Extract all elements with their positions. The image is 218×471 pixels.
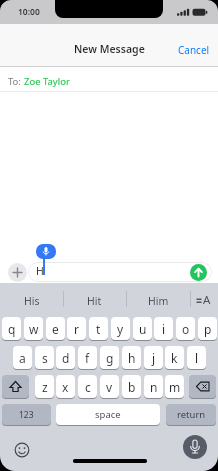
button[interactable] xyxy=(8,263,27,282)
button[interactable]: f xyxy=(78,346,97,369)
button[interactable]: o xyxy=(176,317,195,340)
staticText: z xyxy=(42,379,48,395)
button[interactable] xyxy=(189,375,216,398)
staticText: Cancel xyxy=(178,43,210,57)
button[interactable]: c xyxy=(78,375,97,398)
button[interactable]: l xyxy=(187,346,206,369)
button[interactable]: y xyxy=(111,317,130,340)
staticText: New Message xyxy=(74,42,145,56)
staticText: Hit xyxy=(87,294,102,308)
button[interactable] xyxy=(190,264,207,281)
button[interactable]: s xyxy=(35,346,54,369)
button[interactable]: e xyxy=(46,317,65,340)
staticText: g xyxy=(106,350,114,366)
button[interactable]: a xyxy=(13,346,32,369)
button[interactable]: His xyxy=(0,285,63,317)
button[interactable]: w xyxy=(24,317,43,340)
staticText: d xyxy=(62,350,70,366)
button[interactable]: g xyxy=(100,346,119,369)
staticText: h xyxy=(128,350,136,366)
button[interactable]: space xyxy=(56,404,160,425)
staticText: c xyxy=(85,379,91,395)
button[interactable]: i xyxy=(154,317,173,340)
staticText: return xyxy=(177,408,206,421)
button[interactable]: Hit xyxy=(63,285,126,317)
staticText: w xyxy=(29,321,39,337)
button[interactable]: return xyxy=(166,404,216,425)
button[interactable]: h xyxy=(122,346,141,369)
button[interactable]: v xyxy=(100,375,119,398)
staticText: space xyxy=(95,408,121,421)
button[interactable] xyxy=(13,441,31,459)
button[interactable]: 123 xyxy=(2,404,51,425)
staticText: m xyxy=(169,379,181,395)
button[interactable]: d xyxy=(56,346,75,369)
button[interactable]: b xyxy=(122,375,141,398)
staticText: f xyxy=(85,350,90,366)
button[interactable]: r xyxy=(67,317,86,340)
staticText: 10:00 xyxy=(18,6,40,18)
staticText: j xyxy=(152,350,156,366)
staticText: b xyxy=(128,379,136,395)
staticText: q xyxy=(8,321,16,337)
button[interactable]: q xyxy=(2,317,21,340)
button[interactable] xyxy=(183,435,207,459)
staticText: 123 xyxy=(19,409,34,421)
staticText: e xyxy=(52,321,59,337)
staticText: p xyxy=(204,321,212,337)
staticText: o xyxy=(182,321,190,337)
staticText: r xyxy=(74,321,79,337)
staticText: u xyxy=(139,321,147,337)
staticText: x xyxy=(62,379,69,395)
staticText: Zoe Taylor xyxy=(24,75,70,88)
button[interactable]: Him xyxy=(126,285,190,317)
button[interactable]: p xyxy=(198,317,217,340)
staticText: H xyxy=(36,264,44,278)
button[interactable]: z xyxy=(35,375,54,398)
button[interactable] xyxy=(36,244,56,259)
button[interactable] xyxy=(0,67,218,91)
staticText: A xyxy=(203,292,211,308)
staticText: i xyxy=(162,321,166,337)
button[interactable]: u xyxy=(133,317,152,340)
button[interactable]: n xyxy=(144,375,163,398)
button[interactable]: m xyxy=(165,375,184,398)
staticText: s xyxy=(42,350,48,366)
button[interactable]: k xyxy=(165,346,184,369)
staticText: n xyxy=(150,379,158,395)
staticText: Him xyxy=(148,294,169,308)
staticText: t xyxy=(96,321,101,337)
staticText: To: xyxy=(8,75,21,88)
button[interactable]: t xyxy=(89,317,108,340)
staticText: a xyxy=(19,350,26,366)
staticText: v xyxy=(106,379,113,395)
staticText: His xyxy=(24,294,40,308)
button[interactable]: Cancel xyxy=(174,40,214,60)
button[interactable] xyxy=(2,375,29,398)
staticText: l xyxy=(195,350,199,366)
button[interactable]: x xyxy=(56,375,75,398)
staticText: k xyxy=(171,350,178,366)
staticText: y xyxy=(117,321,124,337)
button[interactable]: j xyxy=(144,346,163,369)
